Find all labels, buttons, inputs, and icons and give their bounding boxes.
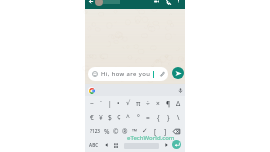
staticText: ¥	[99, 113, 103, 122]
button[interactable]: Previous	[102, 141, 110, 149]
button[interactable]: ]	[160, 124, 170, 138]
staticText: `	[100, 99, 102, 108]
button[interactable]: Δ	[173, 96, 183, 110]
button[interactable]: Hi, how are you	[88, 67, 168, 81]
button[interactable]: ✓	[140, 124, 150, 138]
staticText: {	[157, 113, 160, 122]
button[interactable]: `	[96, 96, 105, 110]
button[interactable]: ¶	[163, 96, 173, 110]
button[interactable]: Backspace	[170, 124, 183, 138]
staticText: ¢	[117, 113, 121, 122]
button[interactable]: Voice input	[176, 86, 184, 94]
button[interactable]: °	[133, 110, 143, 124]
staticText: √	[126, 99, 131, 107]
button[interactable]: ABC	[88, 141, 100, 149]
button[interactable]: ¢	[114, 110, 123, 124]
button[interactable]: ™	[130, 124, 140, 138]
button[interactable]: ~	[87, 96, 96, 110]
staticText: ~	[90, 99, 94, 108]
staticText: ©	[113, 127, 119, 136]
button[interactable]: ÷	[143, 96, 153, 110]
button[interactable]: Back	[87, 0, 93, 4]
staticText: ¶	[166, 99, 171, 108]
staticText: °	[137, 113, 140, 122]
staticText: ÷	[146, 99, 150, 108]
button[interactable]: }	[163, 110, 173, 124]
button[interactable]: $	[105, 110, 114, 124]
button[interactable]: √	[123, 96, 133, 110]
staticText: ™	[132, 127, 138, 136]
button[interactable]: Keyboard options	[112, 141, 120, 149]
staticText: ABC	[89, 142, 99, 148]
button[interactable]: Video call	[152, 0, 160, 5]
button[interactable]: ¥	[96, 110, 105, 124]
staticText: €	[90, 113, 94, 122]
staticText: π	[136, 99, 141, 108]
staticText: ×	[156, 99, 160, 108]
button[interactable]: {	[153, 110, 163, 124]
button[interactable]: Profile photo	[95, 0, 103, 6]
button[interactable]: [	[150, 124, 160, 138]
button[interactable]: π	[133, 96, 143, 110]
button[interactable]: •	[114, 96, 123, 110]
button[interactable]: Enter	[172, 140, 181, 149]
staticText: $	[108, 113, 112, 122]
staticText: Δ	[176, 99, 181, 108]
staticText: ^	[126, 113, 130, 122]
staticText: eTechWorld.com	[127, 134, 175, 142]
button[interactable]: ^	[123, 110, 133, 124]
staticText: =	[146, 113, 150, 122]
button[interactable]: |	[105, 96, 114, 110]
staticText: %	[104, 127, 110, 136]
staticText: ®	[122, 127, 128, 136]
button[interactable]: Next	[162, 141, 170, 149]
button[interactable]: ?123	[87, 124, 102, 138]
button[interactable]: ×	[153, 96, 163, 110]
staticText: }	[167, 113, 170, 122]
button[interactable]: More options	[175, 0, 181, 3]
staticText: [	[154, 127, 157, 136]
staticText: ?123	[90, 128, 100, 134]
staticText: ]	[164, 127, 167, 136]
button[interactable]: ®	[120, 124, 130, 138]
staticText: Hi, how are you	[101, 70, 151, 78]
button[interactable]: %	[102, 124, 111, 138]
button[interactable]: \	[173, 110, 183, 124]
button[interactable]: Send	[172, 67, 184, 79]
staticText: |	[108, 99, 112, 108]
button[interactable]: ©	[111, 124, 120, 138]
button[interactable]: =	[143, 110, 153, 124]
button[interactable]: Voice call	[164, 0, 172, 6]
staticText: •	[117, 99, 120, 108]
staticText: ✓	[142, 127, 148, 135]
button[interactable]: €	[87, 110, 96, 124]
button[interactable]: Google search	[87, 86, 95, 94]
staticText: \	[177, 113, 180, 122]
